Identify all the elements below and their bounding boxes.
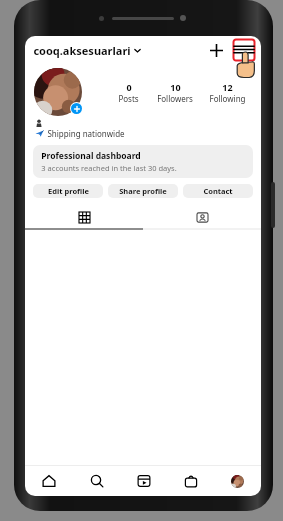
button[interactable]: Menu bbox=[233, 39, 255, 61]
button[interactable]: Add to story bbox=[71, 103, 82, 114]
staticText: Shipping nationwide bbox=[47, 128, 125, 139]
button[interactable]: cooq.aksesuarlari bbox=[33, 41, 141, 60]
staticText: 0 bbox=[126, 81, 132, 93]
staticText: Edit profile bbox=[48, 186, 89, 196]
button[interactable]: Tagged bbox=[143, 206, 261, 228]
button[interactable]: Grid bbox=[25, 206, 143, 228]
button[interactable]: Contact bbox=[183, 184, 253, 198]
button[interactable]: 10 bbox=[157, 81, 193, 104]
button[interactable]: 12 bbox=[209, 81, 246, 104]
staticText: Following bbox=[209, 93, 246, 104]
button[interactable]: Reels bbox=[120, 466, 167, 496]
button[interactable]: Search bbox=[73, 466, 120, 496]
button[interactable]: Shop bbox=[167, 466, 214, 496]
staticText: Posts bbox=[118, 93, 139, 104]
button[interactable]: Edit profile bbox=[33, 184, 103, 198]
staticText: Share profile bbox=[119, 186, 167, 196]
staticText: Contact bbox=[203, 186, 233, 196]
button[interactable]: 0 bbox=[118, 81, 139, 104]
staticText: Professional dashboard bbox=[41, 150, 141, 162]
staticText: cooq.aksesuarlari bbox=[33, 43, 131, 58]
button[interactable]: Home bbox=[25, 466, 73, 496]
staticText: 10 bbox=[170, 81, 181, 93]
staticText: Followers bbox=[157, 93, 193, 104]
staticText: 12 bbox=[222, 81, 233, 93]
staticText: 3 accounts reached in the last 30 days. bbox=[41, 163, 177, 173]
button[interactable]: Share profile bbox=[108, 184, 178, 198]
button[interactable]: Professional dashboard bbox=[33, 145, 253, 178]
button[interactable]: New post bbox=[205, 39, 227, 61]
button[interactable]: Profile bbox=[214, 466, 261, 496]
